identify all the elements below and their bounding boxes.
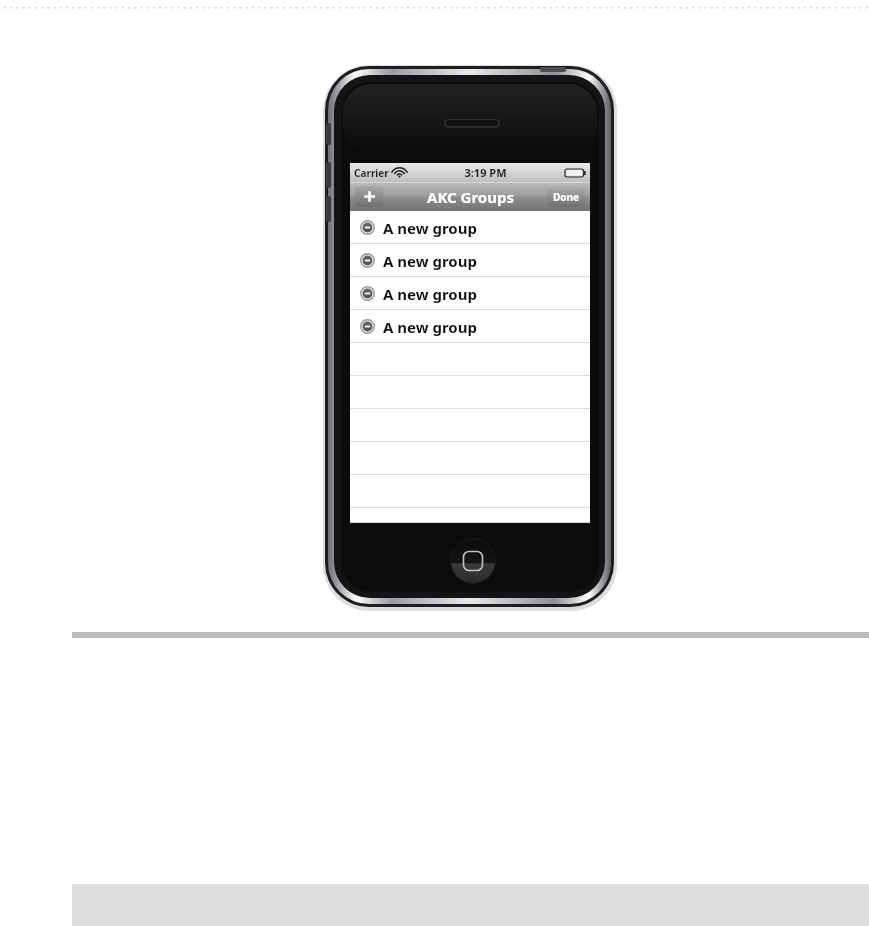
staticText: A new group (383, 251, 477, 271)
staticText: 3:19 PM (406, 165, 565, 180)
staticText: A new group (383, 218, 477, 238)
button[interactable]: Delete group (350, 211, 590, 244)
staticText: A new group (383, 317, 477, 337)
button[interactable]: Delete group (350, 310, 590, 343)
button[interactable]: Add group (355, 186, 383, 207)
button[interactable]: Delete group (350, 277, 590, 310)
staticText: AKC Groups (427, 187, 514, 207)
button[interactable]: Done (547, 186, 585, 207)
staticText: Carrier (354, 166, 389, 180)
staticText: A new group (383, 284, 477, 304)
button[interactable]: Delete group (360, 286, 375, 301)
button[interactable]: Delete group (360, 319, 375, 334)
button[interactable]: Delete group (350, 244, 590, 277)
button[interactable]: Delete group (360, 220, 375, 235)
button[interactable]: Delete group (360, 253, 375, 268)
staticText: Done (553, 190, 580, 204)
